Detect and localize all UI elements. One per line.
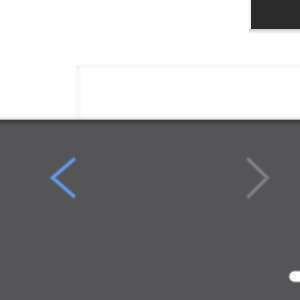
button[interactable]: Toggle [288,270,300,283]
button[interactable]: Next [238,148,282,206]
button[interactable]: Previous [40,148,84,206]
